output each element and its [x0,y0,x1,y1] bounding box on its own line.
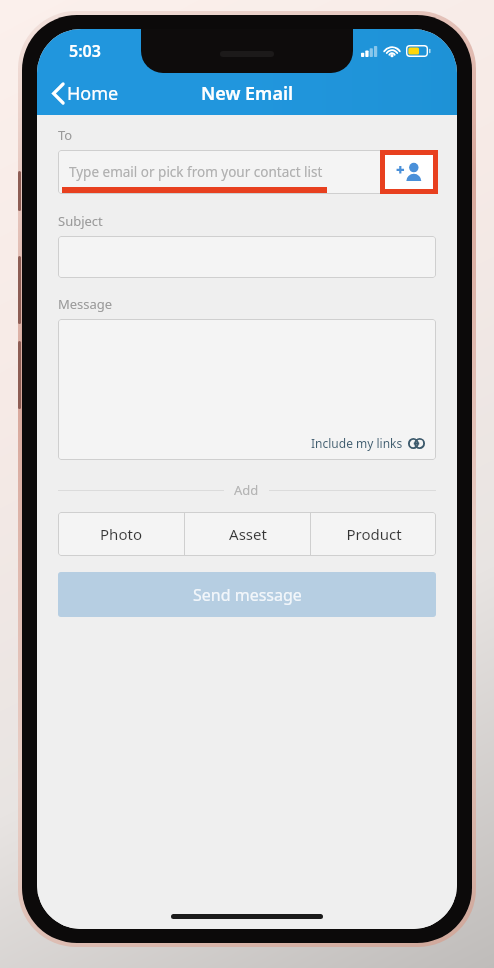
button[interactable] [58,236,436,278]
staticText: Send message [193,584,302,606]
staticText: Type email or pick from your contact lis… [69,163,323,181]
button[interactable]: Type email or pick from your contact lis… [58,150,436,194]
staticText: 5:03 [69,40,101,62]
button[interactable]: Include my links [58,319,436,460]
staticText: Product [346,524,402,544]
staticText: Home [67,81,119,106]
staticText: Include my links [311,435,403,451]
button[interactable]: Send message [58,572,436,617]
button[interactable]: Include my links [309,433,427,453]
staticText: New Email [201,81,294,106]
staticText: Subject [58,212,103,230]
button[interactable]: Home [47,77,125,110]
staticText: Add [234,481,259,499]
button[interactable]: Pick from contact list [385,155,433,189]
staticText: Photo [100,524,142,544]
staticText: Asset [229,524,267,544]
staticText: Message [58,295,113,313]
button[interactable]: Photo [58,512,184,556]
button[interactable]: Asset [185,512,310,556]
button[interactable]: Product [311,512,436,556]
staticText: To [58,126,73,144]
